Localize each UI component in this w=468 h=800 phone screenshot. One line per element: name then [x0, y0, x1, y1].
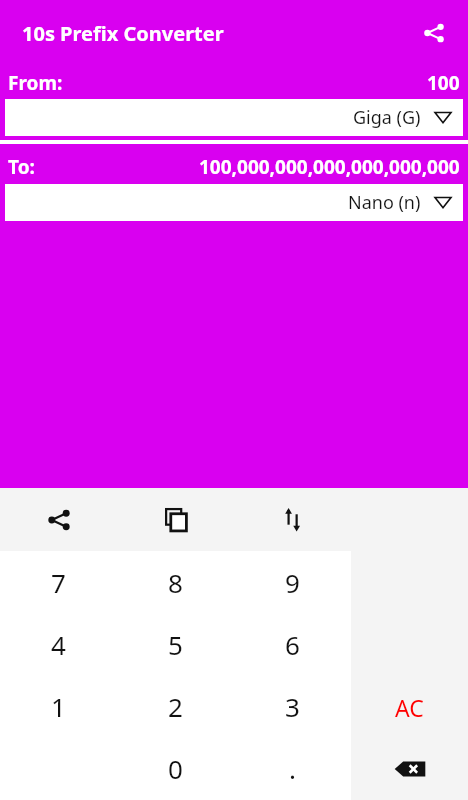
button[interactable]: Swap	[234, 488, 351, 551]
button[interactable]: 7	[0, 551, 117, 613]
button[interactable]: AC	[351, 676, 468, 738]
staticText: 1	[51, 689, 66, 724]
staticText: 100	[427, 70, 460, 96]
staticText: 7	[51, 565, 66, 600]
staticText: .	[289, 751, 296, 786]
staticText: Nano (n)	[348, 190, 421, 215]
button[interactable]: Giga (G)	[5, 99, 463, 136]
button[interactable]: 5	[117, 613, 234, 675]
button[interactable]: Share	[0, 488, 117, 551]
staticText: Giga (G)	[353, 105, 421, 130]
staticText: 9	[285, 565, 300, 600]
button[interactable]: 9	[234, 551, 351, 613]
button[interactable]: 0	[117, 737, 234, 799]
staticText: 10s Prefix Converter	[22, 20, 224, 47]
button[interactable]: 4	[0, 613, 117, 675]
staticText: 2	[168, 689, 183, 724]
staticText: 0	[168, 751, 183, 786]
button[interactable]: 8	[117, 551, 234, 613]
button[interactable]: Nano (n)	[5, 184, 463, 221]
button[interactable]: Share	[414, 13, 454, 53]
button[interactable]: 2	[117, 675, 234, 737]
staticText: From:	[8, 70, 63, 96]
button[interactable]: Backspace	[351, 738, 468, 800]
staticText: 3	[285, 689, 300, 724]
staticText: 6	[285, 627, 300, 662]
button[interactable]: 6	[234, 613, 351, 675]
staticText: 4	[51, 627, 66, 662]
staticText: AC	[395, 692, 424, 723]
button[interactable]: 1	[0, 675, 117, 737]
button[interactable]: .	[234, 737, 351, 799]
staticText: 100,000,000,000,000,000,000	[199, 154, 460, 180]
staticText: 8	[168, 565, 183, 600]
staticText: 5	[168, 627, 183, 662]
staticText: To:	[8, 154, 35, 180]
button[interactable]: Copy	[117, 488, 234, 551]
button[interactable]: 3	[234, 675, 351, 737]
